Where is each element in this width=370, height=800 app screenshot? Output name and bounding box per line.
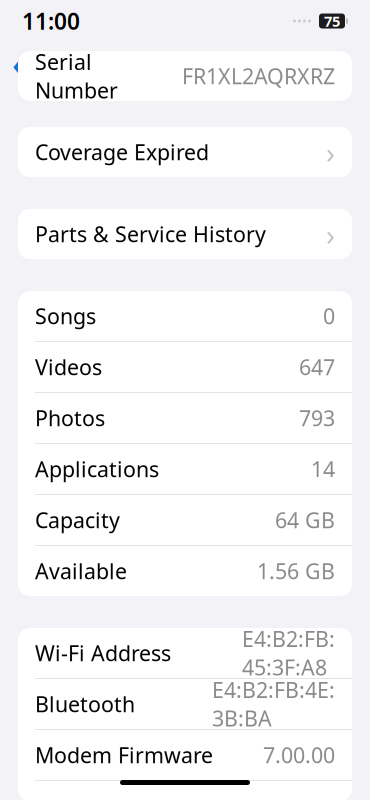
button[interactable]: ‹: [0, 43, 92, 83]
staticText: Coverage Expired: [35, 138, 209, 166]
staticText: 793: [299, 404, 335, 432]
staticText: About: [152, 48, 218, 78]
staticText: Videos: [35, 353, 102, 381]
staticText: Available: [35, 557, 127, 585]
staticText: ‹: [12, 38, 24, 88]
staticText: Applications: [35, 455, 159, 483]
button[interactable]: Parts & Service History: [18, 209, 352, 259]
staticText: Songs: [35, 302, 96, 330]
button[interactable]: Coverage Expired: [18, 127, 352, 177]
staticText: 7.00.00: [263, 741, 335, 769]
staticText: Photos: [35, 404, 105, 432]
staticText: Wi-Fi Address: [35, 639, 171, 667]
staticText: 11:00: [22, 6, 80, 36]
staticText: 1.56 GB: [257, 557, 335, 585]
staticText: Back: [29, 48, 80, 78]
staticText: 14: [311, 455, 335, 483]
staticText: 0: [323, 302, 335, 330]
staticText: Bluetooth: [35, 690, 135, 718]
staticText: E4:B2:FB:4E:3B:BA: [212, 676, 335, 732]
staticText: E4:B2:FB:45:3F:A8: [242, 625, 335, 681]
staticText: Serial Number: [35, 48, 118, 104]
staticText: 64 GB: [275, 506, 335, 534]
staticText: FR1XL2AQRXRZ: [182, 62, 335, 90]
staticText: Modem Firmware: [35, 741, 213, 769]
staticText: Capacity: [35, 506, 120, 534]
staticText: ›: [326, 214, 335, 253]
staticText: 647: [299, 353, 335, 381]
staticText: ›: [326, 132, 335, 171]
staticText: Parts & Service History: [35, 220, 266, 248]
staticText: 75: [324, 11, 340, 31]
